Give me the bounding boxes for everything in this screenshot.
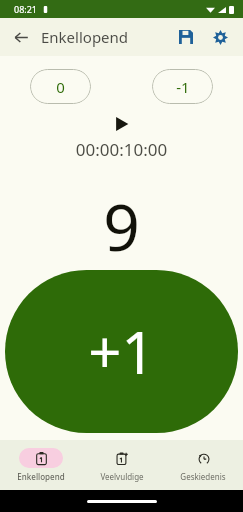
- button[interactable]: -1: [152, 69, 213, 104]
- button[interactable]: Save: [169, 20, 203, 54]
- button[interactable]: Play timer: [109, 113, 135, 135]
- staticText: Geskiedenis: [180, 471, 226, 482]
- button[interactable]: Enkellopend: [0, 440, 81, 490]
- button[interactable]: Back: [5, 21, 37, 53]
- button[interactable]: 0: [30, 69, 91, 104]
- button[interactable]: Settings: [203, 20, 237, 54]
- staticText: Enkellopend: [41, 27, 129, 47]
- staticText: 00:00:10:00: [0, 138, 243, 161]
- staticText: 08:21: [14, 3, 38, 15]
- staticText: Veelvuldige: [100, 471, 144, 482]
- button[interactable]: Geskiedenis: [162, 440, 243, 490]
- staticText: -1: [176, 77, 190, 97]
- staticText: +1: [88, 312, 155, 391]
- staticText: 9: [0, 183, 243, 270]
- button[interactable]: +1: [5, 270, 238, 433]
- staticText: Enkellopend: [17, 471, 65, 482]
- staticText: 0: [56, 77, 65, 97]
- button[interactable]: Veelvuldige: [81, 440, 162, 490]
